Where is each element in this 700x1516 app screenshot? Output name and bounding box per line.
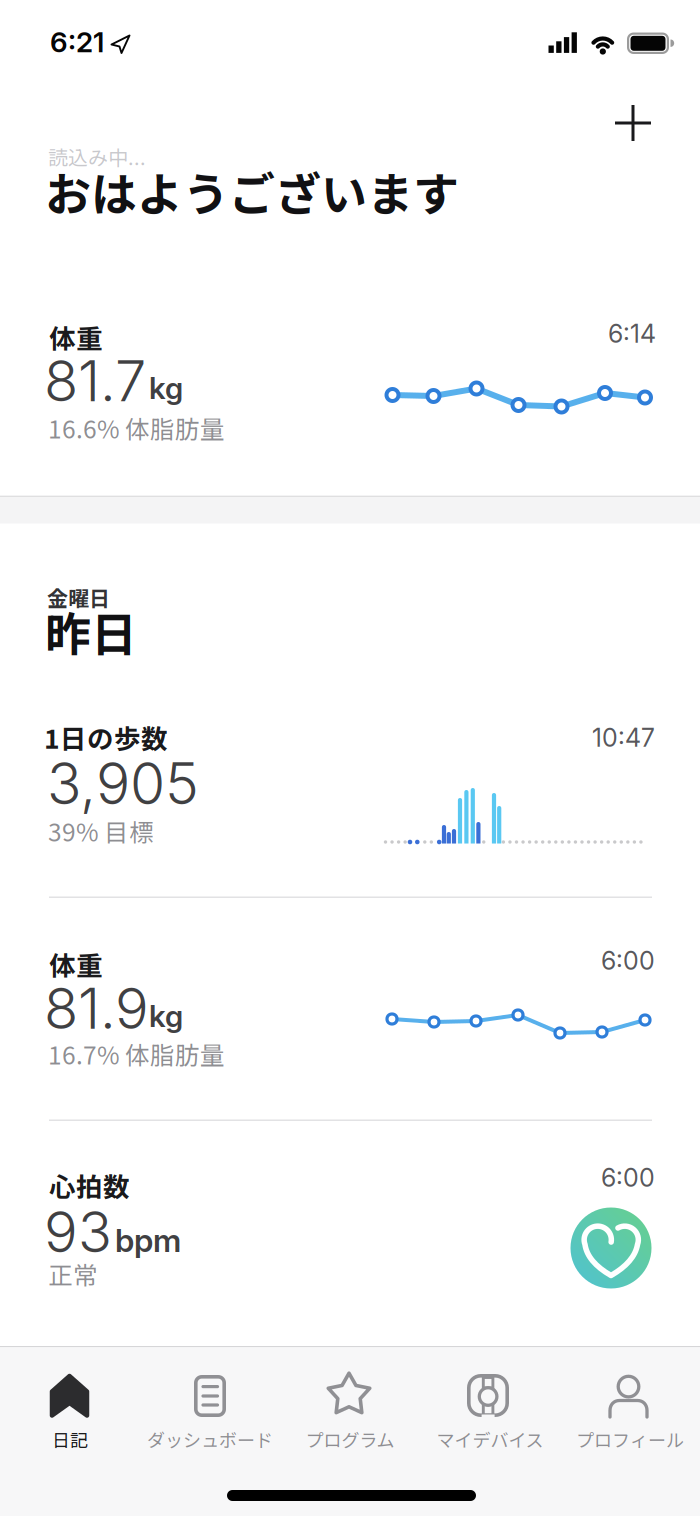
staticText: プログラム	[305, 1426, 394, 1452]
staticText: 16.7% 体脂肪量	[48, 1036, 225, 1071]
staticText: マイデバイス	[436, 1426, 543, 1452]
staticText: kg	[149, 998, 183, 1034]
button[interactable]: プログラム	[280, 1363, 420, 1458]
staticText: kg	[149, 370, 183, 406]
staticText: 金曜日	[47, 582, 110, 612]
staticText: 6:00	[601, 1162, 655, 1193]
staticText: 日記	[52, 1426, 88, 1452]
staticText: 読込み中...	[48, 142, 146, 171]
staticText: 体重	[49, 318, 103, 356]
staticText: 16.6% 体脂肪量	[48, 410, 225, 445]
staticText: 6:21	[50, 25, 104, 59]
button[interactable]: 1日の歩数	[0, 706, 700, 897]
staticText: 3,905	[47, 749, 199, 818]
staticText: 6:14	[608, 318, 656, 349]
staticText: ダッシュボード	[147, 1426, 273, 1452]
staticText: 6:00	[601, 945, 655, 976]
button[interactable]: 体重	[0, 270, 700, 496]
staticText: 体重	[49, 945, 103, 983]
staticText: 81.7	[44, 347, 146, 415]
staticText: おはようございます	[45, 158, 459, 225]
staticText: プロフィール	[576, 1426, 684, 1452]
button[interactable]: マイデバイス	[420, 1363, 560, 1458]
button[interactable]	[603, 93, 663, 153]
staticText: 93	[44, 1198, 112, 1266]
staticText: 81.9	[44, 974, 149, 1042]
staticText: bpm	[115, 1221, 181, 1260]
staticText: 正常	[48, 1256, 98, 1291]
button[interactable]: 体重	[0, 897, 700, 1120]
staticText: 10:47	[592, 722, 655, 753]
button[interactable]: 日記	[0, 1363, 140, 1458]
staticText: 昨日	[45, 598, 137, 665]
button[interactable]: 心拍数	[0, 1120, 700, 1347]
staticText: 心拍数	[49, 1166, 130, 1204]
button[interactable]: ダッシュボード	[140, 1363, 280, 1458]
staticText: 39% 目標	[48, 813, 154, 848]
staticText: 1日の歩数	[44, 718, 168, 756]
button[interactable]: プロフィール	[560, 1363, 700, 1458]
